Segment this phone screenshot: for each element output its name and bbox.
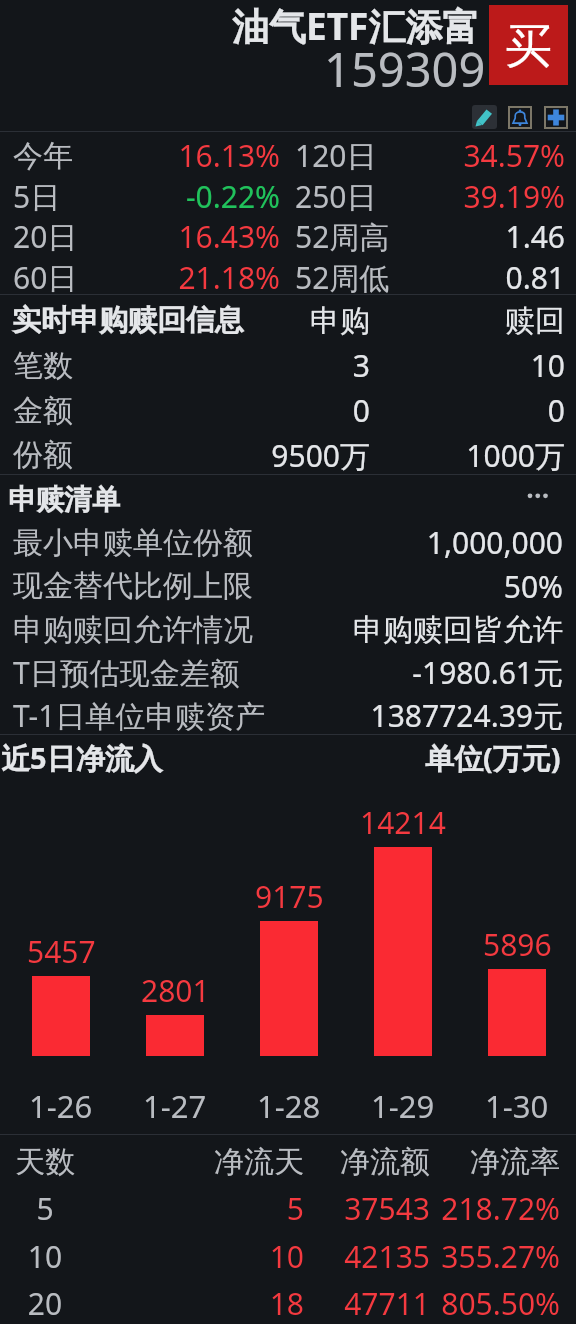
button[interactable]: T-1日单位申赎资产 (0, 691, 576, 734)
button[interactable]: 5 (0, 1182, 576, 1229)
button[interactable]: 20 (0, 1277, 576, 1324)
staticText: 10 (370, 345, 565, 386)
staticText: 申购 (260, 302, 370, 340)
button[interactable]: Price alert (508, 106, 532, 129)
staticText: 10 (0, 1236, 90, 1277)
staticText: 1-30 (485, 1085, 549, 1127)
staticText: 21.18% (134, 257, 280, 297)
staticText: 39.19% (416, 176, 565, 216)
staticText: 3 (260, 345, 370, 386)
staticText: 申赎清单 (8, 482, 528, 517)
staticText: 份额 (13, 436, 260, 474)
staticText: 20日 (13, 216, 134, 257)
staticText: 20 (0, 1283, 90, 1324)
button[interactable]: 现金替代比例上限 (0, 561, 576, 605)
staticText: 1000万 (370, 435, 565, 476)
staticText: 47711 (305, 1283, 430, 1324)
staticText: 1,000,000 (426, 522, 563, 563)
staticText: 52周低 (295, 257, 416, 297)
staticText: 单位(万元) (425, 738, 561, 778)
staticText: 近5日净流入 (1, 738, 425, 778)
button[interactable]: 份额 (0, 430, 576, 474)
button[interactable]: 60日 (0, 254, 576, 294)
staticText: 52周高 (295, 216, 416, 257)
staticText: 16.13% (134, 135, 280, 176)
staticText: 218.72% (431, 1188, 560, 1229)
staticText: 16.43% (134, 216, 280, 257)
button[interactable]: Edit watchlist (472, 105, 497, 129)
staticText: 18 (90, 1283, 304, 1324)
staticText: T-1日单位申赎资产 (13, 695, 370, 736)
staticText: 净流率 (431, 1143, 560, 1181)
staticText: 最小申赎单位份额 (13, 524, 426, 562)
staticText: 250日 (295, 176, 416, 216)
staticText: 5896 (483, 924, 552, 965)
staticText: 实时申购赎回信息 (12, 302, 260, 339)
staticText: 赎回 (370, 302, 565, 340)
staticText: 0 (370, 390, 565, 431)
staticText: 5 (0, 1188, 90, 1229)
staticText: 申购赎回皆允许 (353, 611, 563, 649)
staticText: 金额 (13, 392, 260, 430)
staticText: 1.46 (416, 216, 565, 257)
button[interactable]: Add to watchlist (544, 106, 568, 129)
staticText: -0.22% (134, 176, 280, 216)
staticText: 5日 (13, 176, 134, 216)
staticText: 油气ETF汇添富 (232, 0, 480, 51)
staticText: 34.57% (416, 135, 565, 176)
staticText: 42135 (305, 1236, 430, 1277)
button[interactable]: 实时申购赎回信息 (0, 295, 576, 340)
staticText: 5457 (27, 931, 96, 972)
button[interactable]: 10 (0, 1229, 576, 1277)
staticText: 买 (505, 17, 552, 76)
staticText: 37543 (305, 1188, 430, 1229)
staticText: 2801 (141, 970, 210, 1011)
staticText: 净流额 (305, 1143, 430, 1181)
staticText: 805.50% (431, 1283, 560, 1324)
button[interactable]: 今年 (0, 132, 576, 173)
staticText: 申购赎回允许情况 (13, 611, 353, 649)
button[interactable]: 买 (489, 5, 568, 85)
staticText: 159309 (324, 37, 486, 101)
button[interactable]: 最小申赎单位份额 (0, 518, 576, 561)
staticText: 净流天 (90, 1143, 304, 1181)
staticText: 60日 (13, 257, 134, 297)
staticText: 今年 (13, 137, 134, 175)
staticText: 天数 (0, 1143, 90, 1181)
button[interactable]: More (528, 484, 550, 510)
staticText: 1387724.39元 (370, 695, 563, 736)
staticText: 9175 (255, 876, 324, 917)
button[interactable]: 金额 (0, 385, 576, 430)
staticText: 笔数 (13, 347, 260, 385)
button[interactable]: T日预估现金差额 (0, 648, 576, 691)
staticText: 1-28 (257, 1085, 321, 1127)
staticText: 10 (90, 1236, 304, 1277)
staticText: 5 (90, 1188, 304, 1229)
staticText: -1980.61元 (412, 652, 563, 693)
staticText: 1-29 (371, 1085, 435, 1127)
staticText: 120日 (295, 135, 416, 176)
button[interactable]: 20日 (0, 213, 576, 254)
staticText: 14214 (360, 802, 446, 843)
staticText: 现金替代比例上限 (13, 567, 503, 605)
staticText: 1-26 (29, 1085, 93, 1127)
button[interactable]: 申购赎回允许情况 (0, 605, 576, 648)
staticText: T日预估现金差额 (13, 652, 412, 693)
button[interactable]: 5日 (0, 173, 576, 213)
staticText: 50% (503, 566, 563, 607)
staticText: 355.27% (431, 1236, 560, 1277)
staticText: 0.81 (416, 257, 565, 297)
button[interactable]: 笔数 (0, 340, 576, 385)
staticText: 9500万 (260, 435, 370, 476)
staticText: 1-27 (143, 1085, 207, 1127)
staticText: 0 (260, 390, 370, 431)
button[interactable]: 申赎清单 (0, 475, 576, 518)
